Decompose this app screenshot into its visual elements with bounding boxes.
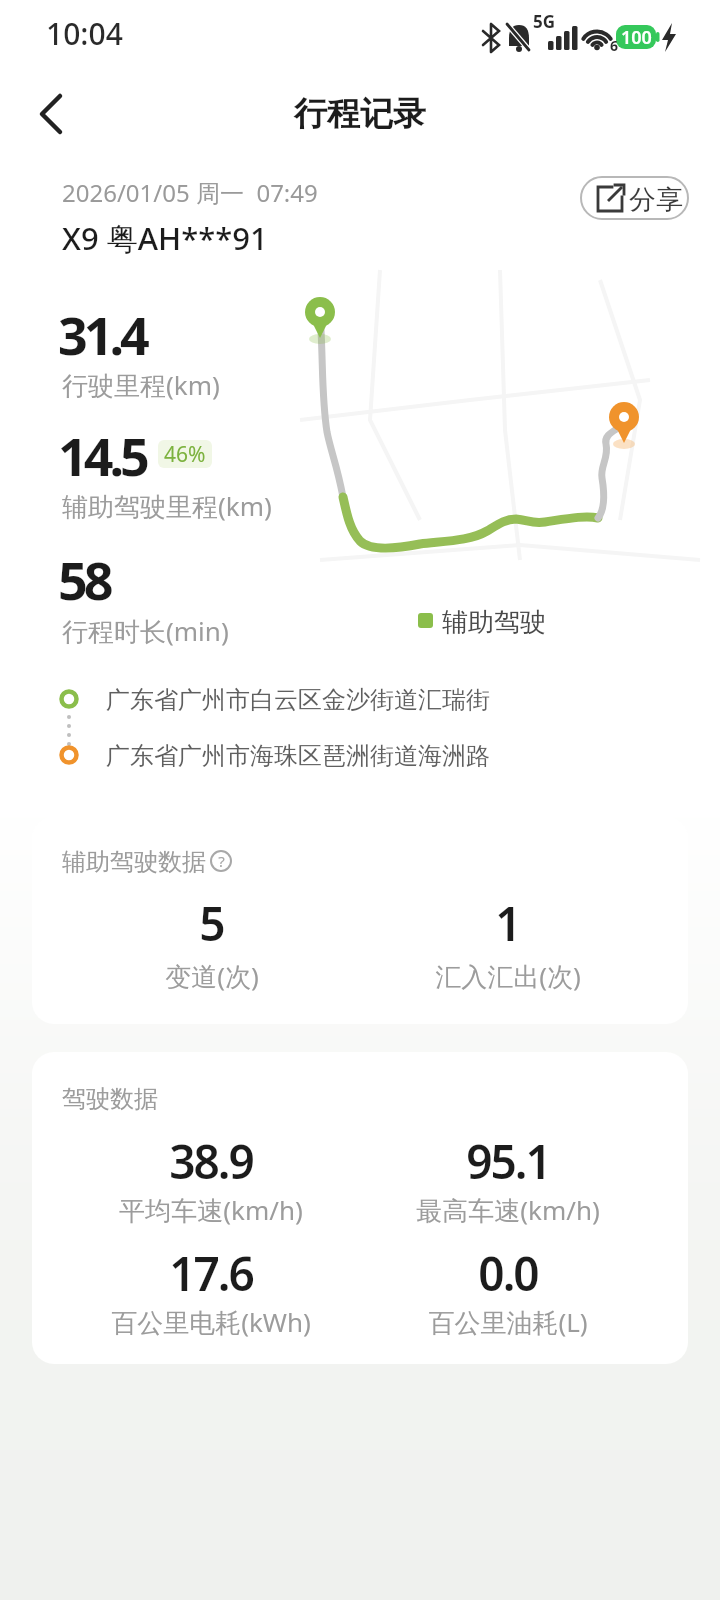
staticText: 38.9 bbox=[169, 1130, 253, 1193]
staticText: 100 bbox=[621, 25, 652, 49]
staticText: 0.0 bbox=[478, 1242, 538, 1305]
staticText: 6 bbox=[610, 36, 619, 55]
staticText: 驾驶数据 bbox=[62, 1084, 158, 1114]
staticText: 广东省广州市白云区金沙街道汇瑞街 bbox=[106, 685, 490, 715]
staticText: 辅助驾驶数据 bbox=[62, 847, 206, 877]
staticText: 平均车速(km/h) bbox=[119, 1192, 303, 1228]
staticText: 行程时长(min) bbox=[62, 613, 229, 649]
staticText: X9 粤AH***91 bbox=[62, 217, 268, 259]
staticText: 汇入汇出(次) bbox=[435, 958, 581, 994]
staticText: 辅助驾驶 bbox=[442, 606, 546, 639]
staticText: 2026/01/05 周一 07:49 bbox=[62, 176, 318, 209]
staticText: ? bbox=[218, 851, 225, 871]
staticText: 31.4 bbox=[58, 299, 146, 370]
staticText: 广东省广州市海珠区琶洲街道海洲路 bbox=[106, 741, 490, 771]
staticText: 百公里电耗(kWh) bbox=[111, 1304, 311, 1340]
staticText: 5 bbox=[199, 892, 225, 955]
staticText: 变道(次) bbox=[165, 958, 259, 994]
staticText: 10:04 bbox=[46, 13, 123, 54]
staticText: 17.6 bbox=[169, 1242, 253, 1305]
staticText: 行程记录 bbox=[294, 93, 426, 135]
staticText: 95.1 bbox=[466, 1130, 550, 1193]
staticText: 辅助驾驶里程(km) bbox=[62, 488, 272, 524]
staticText: 58 bbox=[58, 544, 110, 615]
staticText: 最高车速(km/h) bbox=[416, 1192, 600, 1228]
staticText: 46% bbox=[164, 440, 206, 468]
staticText: 行驶里程(km) bbox=[62, 367, 220, 403]
staticText: 百公里油耗(L) bbox=[428, 1304, 588, 1340]
staticText: 1 bbox=[495, 892, 521, 955]
staticText: 分享 bbox=[629, 183, 683, 217]
staticText: 14.5 bbox=[58, 420, 146, 491]
staticText: 5G bbox=[533, 10, 556, 33]
